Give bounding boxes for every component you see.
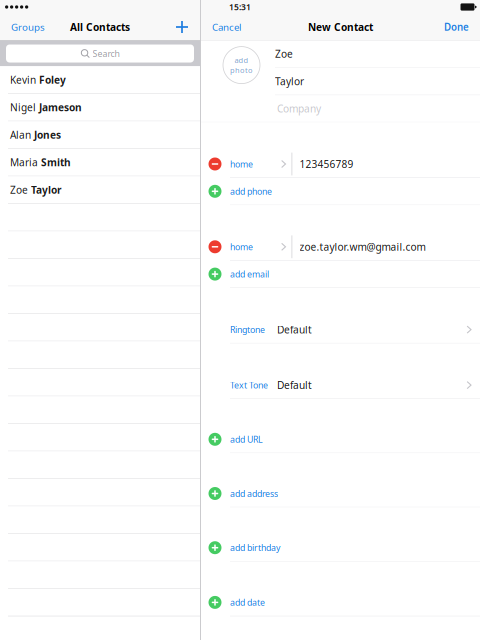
button[interactable]: Ringtone <box>201 316 480 344</box>
staticText: Cancel <box>212 20 242 34</box>
button[interactable]: add date <box>201 589 480 616</box>
button[interactable]: Maria <box>0 149 200 176</box>
button[interactable]: Done <box>436 14 480 40</box>
staticText: add <box>234 55 248 65</box>
staticText: Jones <box>34 128 61 142</box>
staticText: add phone <box>230 185 272 197</box>
staticText: Alan <box>10 128 31 142</box>
button[interactable]: Add photo <box>201 41 275 84</box>
staticText: Ringtone <box>230 324 265 336</box>
staticText: Taylor <box>275 74 304 88</box>
staticText: 15:31 <box>229 1 251 13</box>
staticText: home <box>230 158 253 170</box>
staticText: All Contacts <box>70 20 130 34</box>
button[interactable]: Search <box>0 41 200 66</box>
staticText: home <box>230 241 253 253</box>
staticText: Taylor <box>31 183 62 197</box>
staticText: zoe.taylor.wm@gmail.com <box>299 240 425 254</box>
staticText: Zoe <box>275 47 293 61</box>
staticText: add address <box>230 487 278 499</box>
button[interactable]: Nigel <box>0 94 200 121</box>
staticText: Kevin <box>10 73 36 87</box>
staticText: Done <box>444 20 469 34</box>
staticText: photo <box>230 65 253 75</box>
button[interactable]: home <box>201 233 480 261</box>
staticText: add date <box>230 596 265 608</box>
staticText: 123456789 <box>299 157 353 171</box>
staticText: Maria <box>10 155 38 169</box>
button[interactable]: add birthday <box>201 534 480 562</box>
staticText: Smith <box>41 155 71 169</box>
staticText: Nigel <box>10 100 36 114</box>
staticText: Zoe <box>10 183 28 197</box>
staticText: Text Tone <box>230 379 268 391</box>
staticText: Groups <box>11 20 45 34</box>
staticText: Jameson <box>39 100 82 114</box>
staticText: add URL <box>230 433 263 445</box>
button[interactable]: Text Tone <box>201 372 480 399</box>
staticText: Company <box>277 102 321 115</box>
button[interactable]: Cancel <box>201 14 250 40</box>
button[interactable]: Zoe <box>0 176 200 204</box>
staticText: add birthday <box>230 542 280 554</box>
button[interactable]: add phone <box>201 178 480 205</box>
staticText: Default <box>277 378 312 392</box>
button[interactable]: Add contact <box>168 14 200 40</box>
button[interactable]: add email <box>201 261 480 288</box>
button[interactable]: add URL <box>201 426 480 453</box>
button[interactable]: home <box>201 151 480 178</box>
button[interactable]: Alan <box>0 121 200 149</box>
staticText: Search <box>92 47 119 59</box>
staticText: New Contact <box>308 20 373 34</box>
button[interactable]: Groups <box>0 14 53 40</box>
staticText: Foley <box>39 73 66 87</box>
staticText: Default <box>277 323 312 336</box>
button[interactable]: add address <box>201 480 480 507</box>
staticText: add email <box>230 268 269 280</box>
button[interactable]: Kevin <box>0 66 200 94</box>
